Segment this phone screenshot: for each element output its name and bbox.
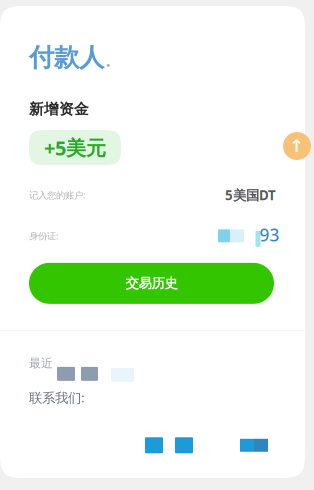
- staticText: .: [106, 50, 110, 71]
- staticText: 5美国DT: [225, 186, 276, 204]
- button[interactable]: 交易历史: [29, 263, 274, 304]
- staticText: 最近: [29, 356, 53, 370]
- staticText: 付款人: [29, 42, 104, 73]
- staticText: ↑: [289, 136, 304, 156]
- staticText: 新增资金: [29, 100, 89, 118]
- staticText: +5美元: [44, 134, 106, 161]
- staticText: 记入您的账户:: [29, 189, 86, 201]
- staticText: 联系我们:: [29, 389, 85, 406]
- staticText: 身份证:: [29, 230, 59, 242]
- button[interactable]: Send: [283, 132, 311, 160]
- staticText: 交易历史: [125, 275, 177, 291]
- staticText: 93: [259, 223, 279, 246]
